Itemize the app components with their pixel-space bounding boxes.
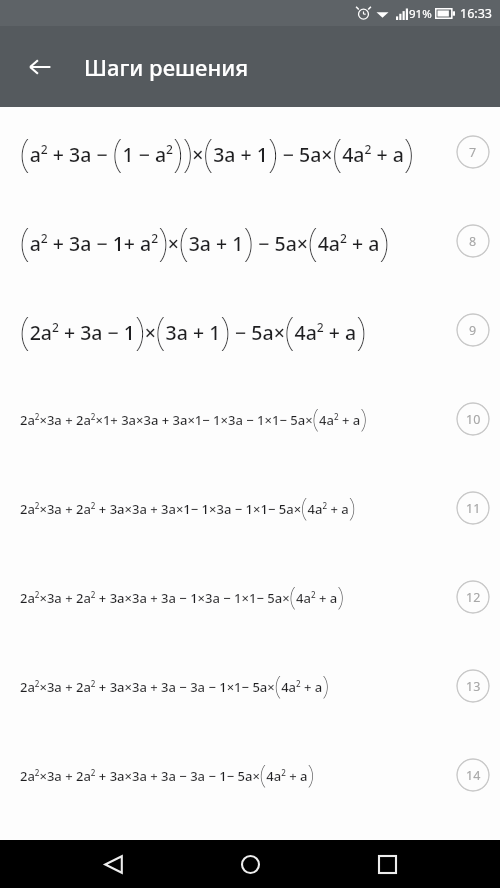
- button[interactable]: 2a2×3a + 2a2×1+ 3a×3a + 3a×1− 1×3a − 1×1…: [0, 374, 500, 463]
- button[interactable]: Step 14: [456, 758, 490, 792]
- button[interactable]: Step 11: [456, 491, 490, 525]
- staticText: 2a2×3a + 2a2 + 3a×3a + 3a×1− 1×3a − 1×1−…: [20, 490, 356, 525]
- button[interactable]: 2a2×3a + 2a2 + 3a×3a + 3a×1− 1×3a − 1×1−…: [0, 463, 500, 552]
- button[interactable]: Step 12: [456, 580, 490, 614]
- staticText: (a2 + 3a − (1 − a2))×(3a + 1) − 5a×(4a2 …: [20, 126, 414, 178]
- staticText: 2a2×3a + 2a2 + 3a×3a + 3a − 3a − 1− 5a×(…: [20, 757, 314, 792]
- button[interactable]: Step 13: [456, 669, 490, 703]
- staticText: 91%: [409, 6, 432, 22]
- button[interactable]: Recent apps: [363, 840, 411, 888]
- button[interactable]: (a2 + 3a − (1 − a2))×(3a + 1) − 5a×(4a2 …: [0, 107, 500, 196]
- button[interactable]: 2a2×3a + 2a2 + 3a×3a + 3a − 3a − 1×1− 5a…: [0, 641, 500, 730]
- button[interactable]: 2a2×3a + 2a2 + 3a×3a + 3a − 1×3a − 1×1− …: [0, 552, 500, 641]
- staticText: 12: [466, 589, 481, 606]
- staticText: Шаги решения: [84, 52, 249, 82]
- button[interactable]: Back: [18, 45, 62, 89]
- staticText: 9: [469, 322, 477, 339]
- staticText: 2a2×3a + 2a2×1+ 3a×3a + 3a×1− 1×3a − 1×1…: [20, 401, 367, 436]
- button[interactable]: 2a2×3a + 2a2 + 3a×3a + 3a − 3a − 1− 5a×(…: [0, 730, 500, 819]
- staticText: 16:33: [460, 5, 492, 22]
- button[interactable]: Home: [226, 840, 274, 888]
- button[interactable]: Back: [89, 840, 137, 888]
- staticText: 2a2×3a + 2a2 + 3a×3a + 3a − 3a − 1×1− 5a…: [20, 668, 329, 703]
- staticText: 13: [466, 678, 481, 695]
- staticText: (a2 + 3a − 1+ a2)×(3a + 1) − 5a×(4a2 + a…: [20, 215, 390, 267]
- staticText: 8: [469, 233, 477, 250]
- button[interactable]: Step 9: [456, 313, 490, 347]
- staticText: 14: [466, 767, 481, 784]
- button[interactable]: (a2 + 3a − 1+ a2)×(3a + 1) − 5a×(4a2 + a…: [0, 196, 500, 285]
- staticText: 2a2×3a + 2a2 + 3a×3a + 3a − 1×3a − 1×1− …: [20, 579, 344, 614]
- staticText: (2a2 + 3a − 1)×(3a + 1) − 5a×(4a2 + a): [20, 304, 366, 356]
- button[interactable]: Step 7: [456, 135, 490, 169]
- staticText: 10: [466, 411, 481, 428]
- button[interactable]: (2a2 + 3a − 1)×(3a + 1) − 5a×(4a2 + a): [0, 285, 500, 374]
- button[interactable]: Step 10: [456, 402, 490, 436]
- button[interactable]: Step 8: [456, 224, 490, 258]
- staticText: 7: [469, 144, 477, 161]
- staticText: 11: [466, 500, 481, 517]
